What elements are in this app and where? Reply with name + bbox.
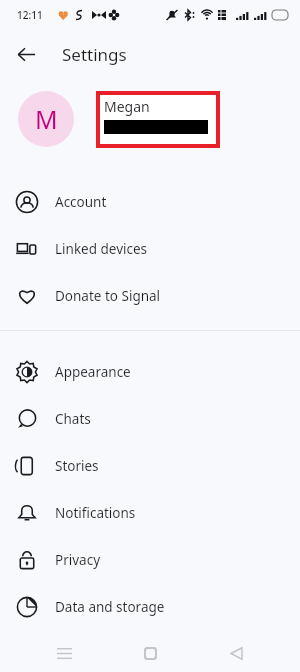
staticText: Chats bbox=[55, 410, 91, 428]
button[interactable]: Account bbox=[0, 178, 300, 225]
button[interactable]: Donate to Signal bbox=[0, 272, 300, 319]
button[interactable]: Stories bbox=[0, 442, 300, 489]
button[interactable]: Recent apps bbox=[42, 634, 86, 672]
staticText: Settings bbox=[62, 43, 127, 66]
staticText: Stories bbox=[55, 457, 99, 475]
button[interactable]: Appearance bbox=[0, 348, 300, 395]
staticText: 12:11 bbox=[17, 8, 43, 22]
button[interactable]: Linked devices bbox=[0, 225, 300, 272]
staticText: Appearance bbox=[55, 363, 131, 381]
staticText: M bbox=[35, 102, 58, 136]
button[interactable]: Home bbox=[128, 634, 172, 672]
button[interactable]: Back bbox=[214, 634, 258, 672]
button[interactable]: Privacy bbox=[0, 536, 300, 583]
staticText: Megan bbox=[104, 97, 150, 116]
staticText: Linked devices bbox=[55, 240, 148, 258]
staticText: Data and storage bbox=[55, 598, 165, 616]
button[interactable]: Notifications bbox=[0, 489, 300, 536]
staticText: Privacy bbox=[55, 551, 101, 569]
staticText: Notifications bbox=[55, 504, 136, 522]
button[interactable]: Back bbox=[8, 36, 44, 72]
staticText: Donate to Signal bbox=[55, 287, 161, 305]
staticText: Account bbox=[55, 193, 107, 211]
button[interactable]: Data and storage bbox=[0, 583, 300, 630]
button[interactable]: Chats bbox=[0, 395, 300, 442]
button[interactable]: M bbox=[0, 78, 300, 160]
